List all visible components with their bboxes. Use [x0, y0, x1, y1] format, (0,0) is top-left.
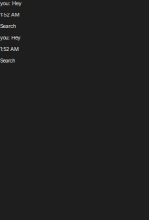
staticText: you: Hey	[0, 34, 21, 41]
staticText: Search	[0, 23, 16, 29]
staticText: Search	[0, 57, 15, 64]
staticText: 1:52 AM	[0, 46, 19, 52]
staticText: 1:52 AM	[0, 11, 20, 18]
staticText: you: Hey	[0, 0, 22, 6]
